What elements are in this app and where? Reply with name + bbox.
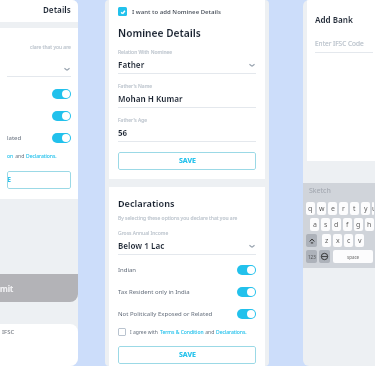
button[interactable]: 123 bbox=[306, 250, 317, 263]
button[interactable]: q bbox=[306, 202, 315, 215]
staticText: Relation With Nominee bbox=[118, 49, 173, 56]
staticText: Father's Age bbox=[118, 117, 148, 124]
button[interactable]: v bbox=[355, 234, 364, 247]
staticText: Terms & Condition bbox=[160, 329, 204, 336]
staticText: By selecting these options you declare t… bbox=[118, 215, 238, 222]
button[interactable]: d bbox=[332, 218, 341, 231]
staticText: I want to add Nominee Details bbox=[132, 8, 221, 16]
button[interactable]: w bbox=[317, 202, 326, 215]
staticText: r bbox=[342, 204, 345, 214]
staticText: Nominee Details bbox=[118, 26, 201, 40]
button[interactable]: Tax Resident only in India bbox=[118, 281, 256, 303]
staticText: 123 bbox=[308, 254, 316, 260]
staticText: space bbox=[347, 254, 360, 260]
button[interactable]: SAVE bbox=[118, 346, 256, 364]
button[interactable]: on bbox=[7, 153, 57, 160]
button[interactable]: Father's Name bbox=[118, 83, 256, 108]
button[interactable]: Toggle switch bbox=[52, 89, 71, 99]
staticText: Enter IFSC Code bbox=[315, 39, 364, 48]
button[interactable]: z bbox=[322, 234, 331, 247]
staticText: s bbox=[324, 220, 328, 230]
button[interactable]: c bbox=[344, 234, 353, 247]
staticText: Declarations bbox=[118, 197, 175, 209]
button[interactable]: u bbox=[372, 202, 374, 215]
staticText: Declarations. bbox=[216, 329, 247, 336]
button[interactable]: y bbox=[361, 202, 370, 215]
button[interactable]: r bbox=[339, 202, 348, 215]
staticText: e bbox=[331, 204, 335, 214]
staticText: Details bbox=[43, 4, 71, 15]
button[interactable]: Relation With Nominee bbox=[118, 49, 256, 74]
staticText: Below 1 Lac bbox=[118, 240, 248, 251]
staticText: I agree with bbox=[130, 329, 160, 336]
button[interactable]: a bbox=[310, 218, 319, 231]
button[interactable]: Toggle switch bbox=[237, 287, 256, 297]
staticText: IFSC bbox=[2, 328, 15, 336]
staticText: lated bbox=[7, 134, 22, 142]
staticText: Mohan H Kumar bbox=[118, 93, 256, 104]
staticText: E bbox=[7, 175, 11, 185]
staticText: Father bbox=[118, 59, 248, 70]
staticText: z bbox=[325, 236, 329, 246]
staticText: and bbox=[14, 153, 26, 160]
button[interactable]: I agree with bbox=[118, 328, 247, 336]
button[interactable]: Gross Annual Income bbox=[118, 230, 256, 255]
staticText: Sketch bbox=[309, 186, 331, 196]
button[interactable]: s bbox=[321, 218, 330, 231]
button[interactable]: Shift bbox=[306, 234, 317, 247]
staticText: w bbox=[319, 204, 325, 214]
staticText: 56 bbox=[118, 127, 256, 138]
staticText: SAVE bbox=[179, 350, 196, 360]
button[interactable]: SAVE bbox=[118, 152, 256, 170]
button[interactable]: lated bbox=[7, 127, 71, 149]
staticText: x bbox=[336, 236, 340, 246]
button[interactable]: Toggle switch bbox=[7, 105, 71, 127]
button[interactable]: t bbox=[350, 202, 359, 215]
staticText: Add Bank Account bbox=[315, 14, 373, 25]
button[interactable]: I want to add Nominee Details bbox=[118, 7, 221, 16]
staticText: Indian bbox=[118, 266, 237, 274]
button[interactable]: Emoji keyboard bbox=[319, 250, 330, 263]
button[interactable]: Toggle switch bbox=[237, 309, 256, 319]
staticText: SAVE bbox=[179, 156, 196, 166]
staticText: q bbox=[308, 204, 313, 214]
staticText: Father's Name bbox=[118, 83, 153, 90]
button[interactable] bbox=[7, 65, 71, 73]
button[interactable]: Indian bbox=[118, 259, 256, 281]
button[interactable]: Toggle switch bbox=[52, 111, 71, 121]
staticText: c bbox=[347, 236, 351, 246]
staticText: d bbox=[334, 220, 339, 230]
button[interactable]: e bbox=[328, 202, 337, 215]
staticText: t bbox=[353, 204, 356, 214]
button[interactable]: space bbox=[333, 250, 373, 263]
staticText: clare that you are bbox=[30, 44, 71, 51]
staticText: h bbox=[367, 220, 372, 230]
staticText: and bbox=[204, 329, 216, 336]
staticText: g bbox=[356, 220, 361, 230]
button[interactable]: Toggle switch bbox=[237, 265, 256, 275]
button[interactable]: E bbox=[7, 171, 71, 189]
button[interactable]: x bbox=[333, 234, 342, 247]
staticText: Tax Resident only in India bbox=[118, 288, 237, 296]
button[interactable]: g bbox=[354, 218, 363, 231]
staticText: mit bbox=[0, 283, 14, 294]
button[interactable]: f bbox=[343, 218, 352, 231]
button[interactable]: Not Politically Exposed or Related bbox=[118, 303, 256, 325]
staticText: y bbox=[364, 204, 368, 214]
staticText: u bbox=[372, 204, 374, 214]
staticText: f bbox=[346, 220, 349, 230]
staticText: v bbox=[358, 236, 362, 246]
button[interactable]: h bbox=[365, 218, 374, 231]
staticText: Not Politically Exposed or Related bbox=[118, 310, 237, 318]
button[interactable]: Toggle switch bbox=[52, 133, 71, 143]
staticText: a bbox=[313, 220, 317, 230]
staticText: Declarations. bbox=[26, 153, 57, 160]
staticText: Gross Annual Income bbox=[118, 230, 169, 237]
button[interactable]: Father's Age bbox=[118, 117, 256, 142]
button[interactable]: Toggle switch bbox=[7, 83, 71, 105]
button[interactable]: mit bbox=[0, 274, 78, 302]
staticText: on bbox=[7, 153, 14, 160]
